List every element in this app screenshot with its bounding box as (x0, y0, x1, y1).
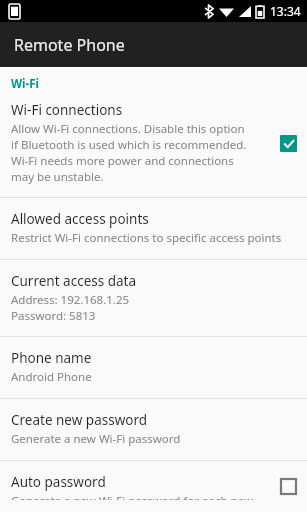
staticText: Phone name (11, 349, 92, 367)
staticText: Password: 5813 (11, 308, 96, 324)
button[interactable]: Current access data (0, 260, 307, 336)
staticText: Wi-Fi connections (11, 101, 123, 119)
staticText: Current access data (11, 272, 137, 290)
button[interactable]: Allowed access points (0, 198, 307, 259)
staticText: Allowed access points (11, 210, 149, 228)
button[interactable]: Wi-Fi connections enabled (280, 135, 297, 152)
staticText: may be unstable. (11, 169, 104, 185)
staticText: if Bluetooth is used which is recommende… (11, 137, 247, 153)
staticText: Generate a new Wi-Fi password (11, 431, 181, 447)
staticText: Auto password (11, 473, 106, 491)
staticText: Android Phone (11, 369, 92, 385)
staticText: Wi-Fi (11, 76, 39, 92)
button[interactable]: Create new password (0, 399, 307, 460)
button[interactable]: Wi-Fi connections (0, 95, 307, 197)
button[interactable]: Auto password disabled (280, 478, 297, 495)
button[interactable]: Phone name (0, 337, 307, 398)
button[interactable]: Auto password (0, 461, 307, 512)
staticText: Remote Phone (14, 34, 125, 56)
staticText: Wi-Fi needs more power and connections (11, 153, 234, 169)
staticText: Generate a new Wi-Fi password for each n… (11, 493, 253, 500)
staticText: Restrict Wi-Fi connections to specific a… (11, 230, 282, 246)
staticText: Address: 192.168.1.25 (11, 292, 130, 308)
staticText: Allow Wi-Fi connections. Disable this op… (11, 121, 245, 137)
staticText: 13:34 (270, 3, 301, 19)
staticText: Create new password (11, 411, 148, 429)
